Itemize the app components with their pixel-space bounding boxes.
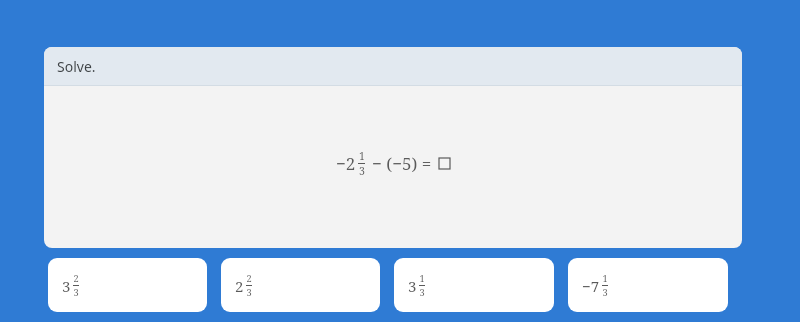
staticText: 3 (408, 276, 417, 296)
staticText: 3 (246, 286, 252, 299)
staticText: Solve. (57, 57, 96, 76)
staticText: 1 (602, 272, 608, 285)
button[interactable]: 2 (221, 258, 380, 312)
staticText: 1 (359, 149, 365, 163)
staticText: 3 (359, 164, 365, 178)
button[interactable]: −7 (568, 258, 728, 312)
staticText: 2 (73, 272, 79, 285)
staticText: 1 (419, 272, 425, 285)
button[interactable]: 3 (394, 258, 554, 312)
staticText: 3 (62, 276, 71, 296)
staticText: − (−5) = (372, 152, 432, 175)
staticText: 2 (235, 276, 244, 296)
staticText: 3 (602, 286, 608, 299)
staticText: 3 (73, 286, 79, 299)
staticText: −2 (336, 152, 356, 175)
staticText: −7 (582, 276, 600, 296)
button[interactable]: 3 (48, 258, 207, 312)
staticText: 2 (246, 272, 252, 285)
staticText: 3 (419, 286, 425, 299)
